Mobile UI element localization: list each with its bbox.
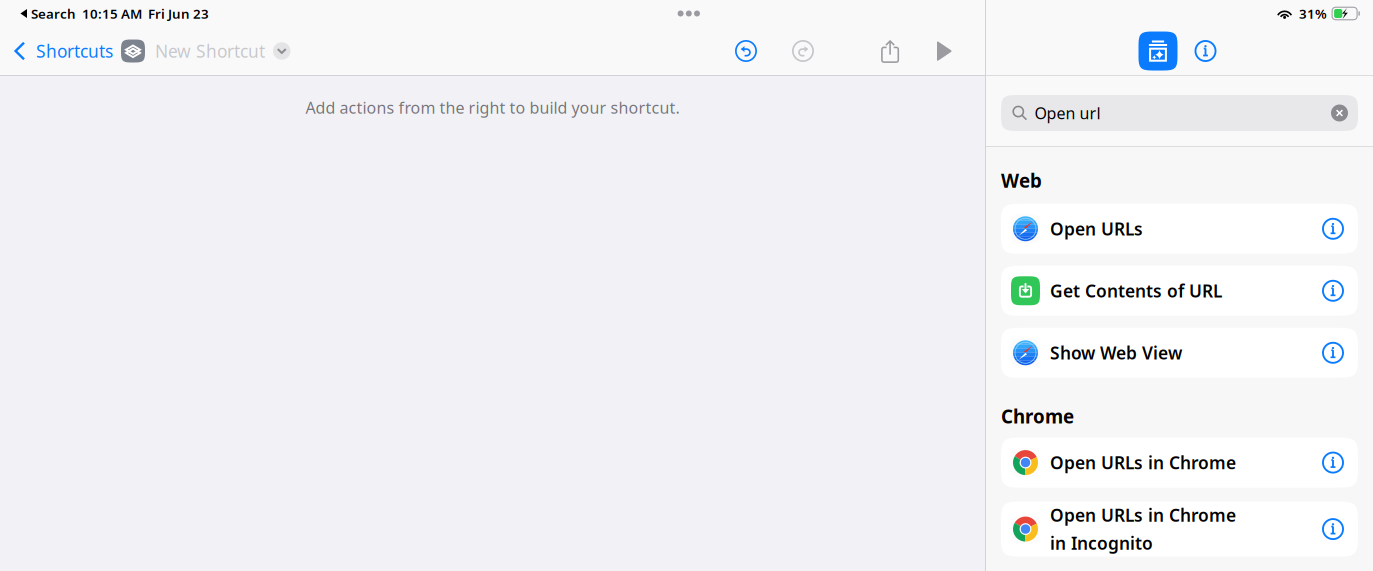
staticText: Search [31, 5, 76, 22]
button[interactable]: Show Web View [1001, 328, 1358, 378]
staticText: Show Web View [1050, 341, 1182, 364]
staticText: Get Contents of URL [1050, 279, 1222, 302]
button[interactable]: Open URLs in Chrome [1001, 438, 1358, 488]
button[interactable]: Open url [1001, 95, 1358, 131]
staticText: Open URLs in Chrome [1050, 451, 1236, 474]
staticText: Open URLs [1050, 217, 1143, 240]
button[interactable]: Get Contents of URL [1001, 266, 1358, 316]
button[interactable]: Shortcuts [14, 34, 113, 67]
staticText: Add actions from the right to build your… [305, 97, 679, 118]
staticText: Fri Jun 23 [148, 5, 209, 22]
staticText: 10:15 AM [82, 5, 142, 22]
button[interactable]: Add action [1138, 31, 1177, 70]
staticText: Shortcuts [36, 39, 113, 62]
button[interactable]: Information [1190, 40, 1220, 62]
button[interactable]: Open URLs in Chrome [1001, 502, 1358, 557]
staticText: Open url [1034, 102, 1100, 124]
button[interactable]: Shortcut options [265, 36, 296, 66]
button[interactable]: Redo [785, 34, 821, 68]
staticText: Chrome [1001, 404, 1074, 429]
button[interactable]: Undo [728, 34, 764, 68]
button[interactable]: Open URLs [1001, 204, 1358, 254]
staticText: in Incognito [1050, 532, 1153, 555]
staticText: New Shortcut [155, 39, 265, 62]
staticText: Open URLs in Chrome [1050, 504, 1236, 527]
button[interactable]: Run shortcut [929, 34, 959, 68]
button[interactable]: Share [872, 34, 908, 68]
staticText: Web [1001, 168, 1042, 193]
staticText: 31% [1299, 5, 1327, 22]
